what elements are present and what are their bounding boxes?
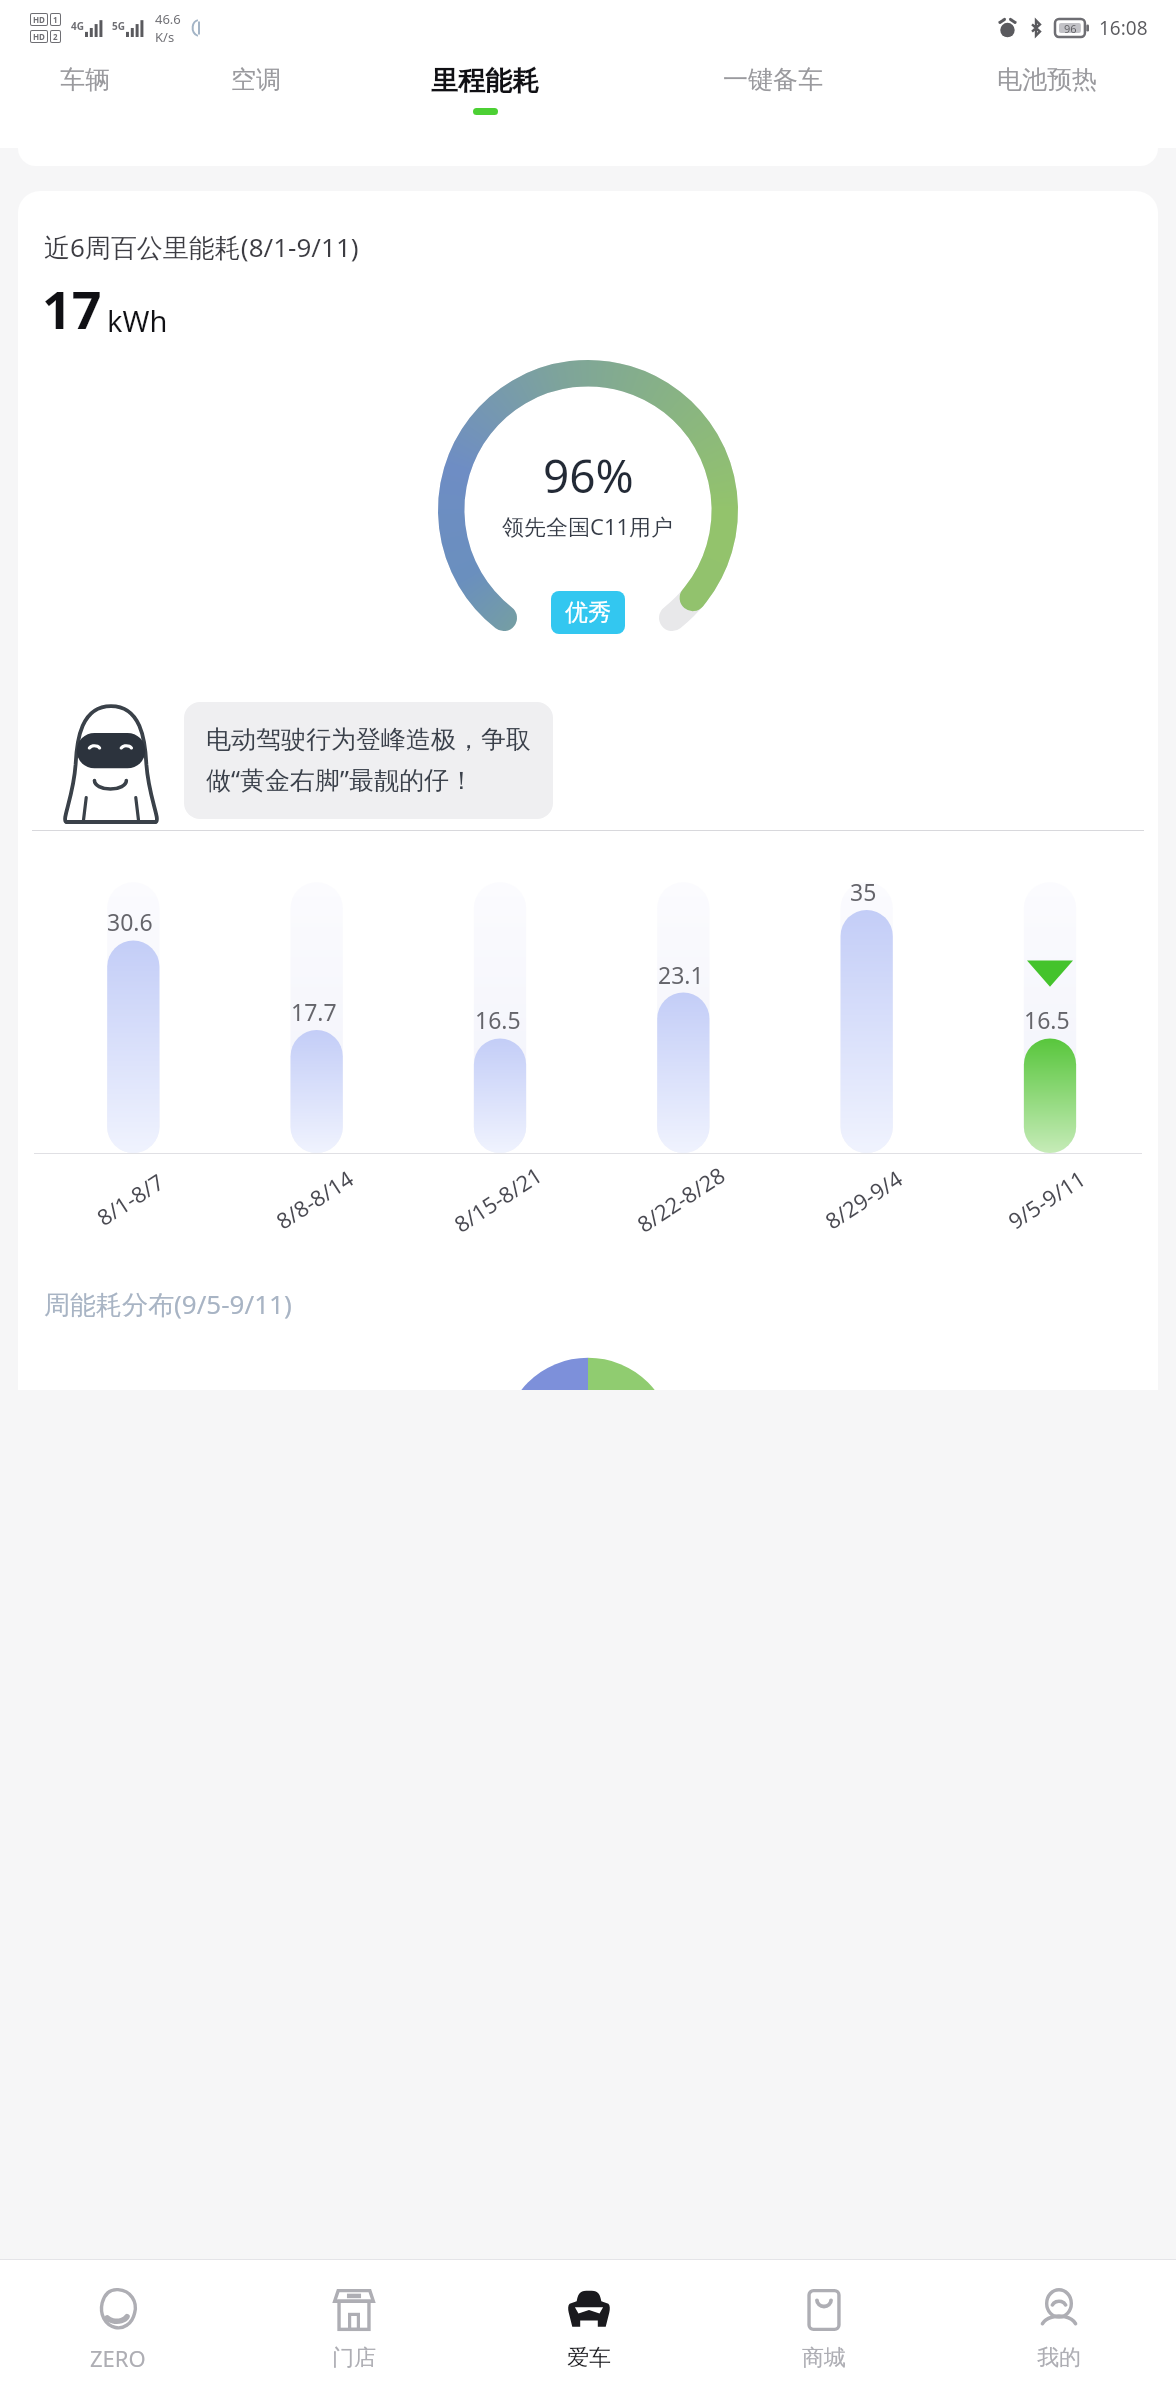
staticText: 电动驾驶行为登峰造极，争取 做“黄金右脚”最靓的仔！ — [206, 724, 531, 797]
button[interactable]: 优秀 — [551, 591, 625, 634]
button[interactable]: 商城 — [706, 2260, 941, 2400]
button[interactable]: 我的 — [941, 2260, 1176, 2400]
staticText: 车辆 — [60, 64, 110, 95]
button[interactable]: 车辆 — [0, 56, 170, 148]
button[interactable]: 电池预热 — [917, 56, 1176, 148]
staticText: 空调 — [231, 64, 281, 95]
button[interactable]: 爱车 — [471, 2260, 706, 2400]
button[interactable]: 里程能耗 — [341, 56, 629, 148]
staticText: 商城 — [802, 2344, 846, 2372]
staticText: 5G — [112, 19, 125, 33]
staticText: 96 — [1064, 21, 1077, 36]
staticText: 优秀 — [565, 598, 611, 627]
staticText: 爱车 — [567, 2344, 611, 2372]
staticText: 电池预热 — [997, 64, 1097, 95]
staticText: 一键备车 — [723, 64, 823, 95]
staticText: 8/15-8/21 — [448, 1159, 547, 1239]
staticText: 我的 — [1037, 2344, 1081, 2372]
staticText: 里程能耗 — [431, 64, 539, 98]
staticText: 8/29-9/4 — [819, 1163, 908, 1235]
staticText: 23.1 — [658, 959, 704, 990]
button[interactable]: 门店 — [236, 2260, 471, 2400]
staticText: ZERO — [90, 2343, 146, 2373]
staticText: 16:08 — [1099, 15, 1148, 41]
staticText: 2 — [53, 31, 58, 42]
staticText: 周能耗分布(9/5-9/11) — [44, 1286, 292, 1322]
staticText: 近6周百公里能耗(8/1-9/11) — [44, 229, 359, 265]
staticText: 8/8-8/14 — [270, 1163, 359, 1235]
staticText: 8/22-8/28 — [631, 1159, 730, 1239]
staticText: 门店 — [332, 2344, 376, 2372]
staticText: 16.5 — [475, 1004, 521, 1035]
staticText: 17 — [42, 273, 102, 344]
staticText: 9/5-9/11 — [1002, 1163, 1091, 1235]
staticText: 46.6 — [155, 10, 181, 28]
staticText: K/s — [155, 28, 175, 46]
button[interactable]: ZERO — [0, 2260, 236, 2400]
staticText: 8/1-8/7 — [91, 1166, 169, 1232]
staticText: 30.6 — [107, 906, 153, 937]
staticText: 35 — [850, 876, 877, 907]
staticText: 17.7 — [291, 996, 337, 1027]
staticText: kWh — [107, 301, 168, 340]
staticText: HD — [33, 31, 45, 42]
staticText: 96% — [543, 444, 634, 507]
button[interactable]: 一键备车 — [629, 56, 917, 148]
staticText: HD — [33, 14, 45, 25]
staticText: 16.5 — [1024, 1004, 1070, 1035]
button[interactable]: 空调 — [170, 56, 341, 148]
staticText: 领先全国C11用户 — [502, 511, 674, 541]
staticText: 4G — [71, 19, 84, 33]
staticText: 1 — [53, 14, 58, 25]
